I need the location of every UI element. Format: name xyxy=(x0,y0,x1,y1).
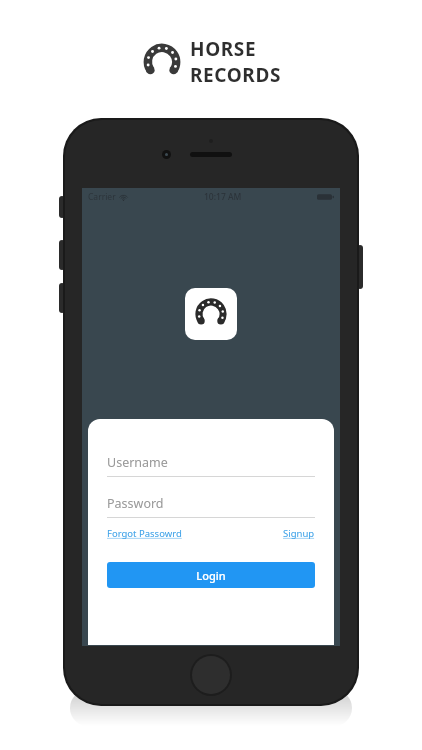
staticText: Forgot Passowrd xyxy=(107,527,182,540)
staticText: Carrier xyxy=(88,191,116,203)
button[interactable]: Signup xyxy=(283,527,315,540)
button[interactable]: Password xyxy=(107,489,315,517)
staticText: HORSE xyxy=(190,36,257,62)
button[interactable]: Home xyxy=(192,656,230,694)
staticText: Login xyxy=(196,568,226,583)
button[interactable]: Forgot Passowrd xyxy=(107,527,182,540)
staticText: RECORDS xyxy=(190,62,281,88)
staticText: 10:17 AM xyxy=(204,191,242,203)
staticText: Username xyxy=(107,454,168,471)
button[interactable]: Username xyxy=(107,448,315,476)
staticText: Signup xyxy=(283,527,315,540)
button[interactable]: Login xyxy=(107,562,315,588)
staticText: Password xyxy=(107,495,164,512)
